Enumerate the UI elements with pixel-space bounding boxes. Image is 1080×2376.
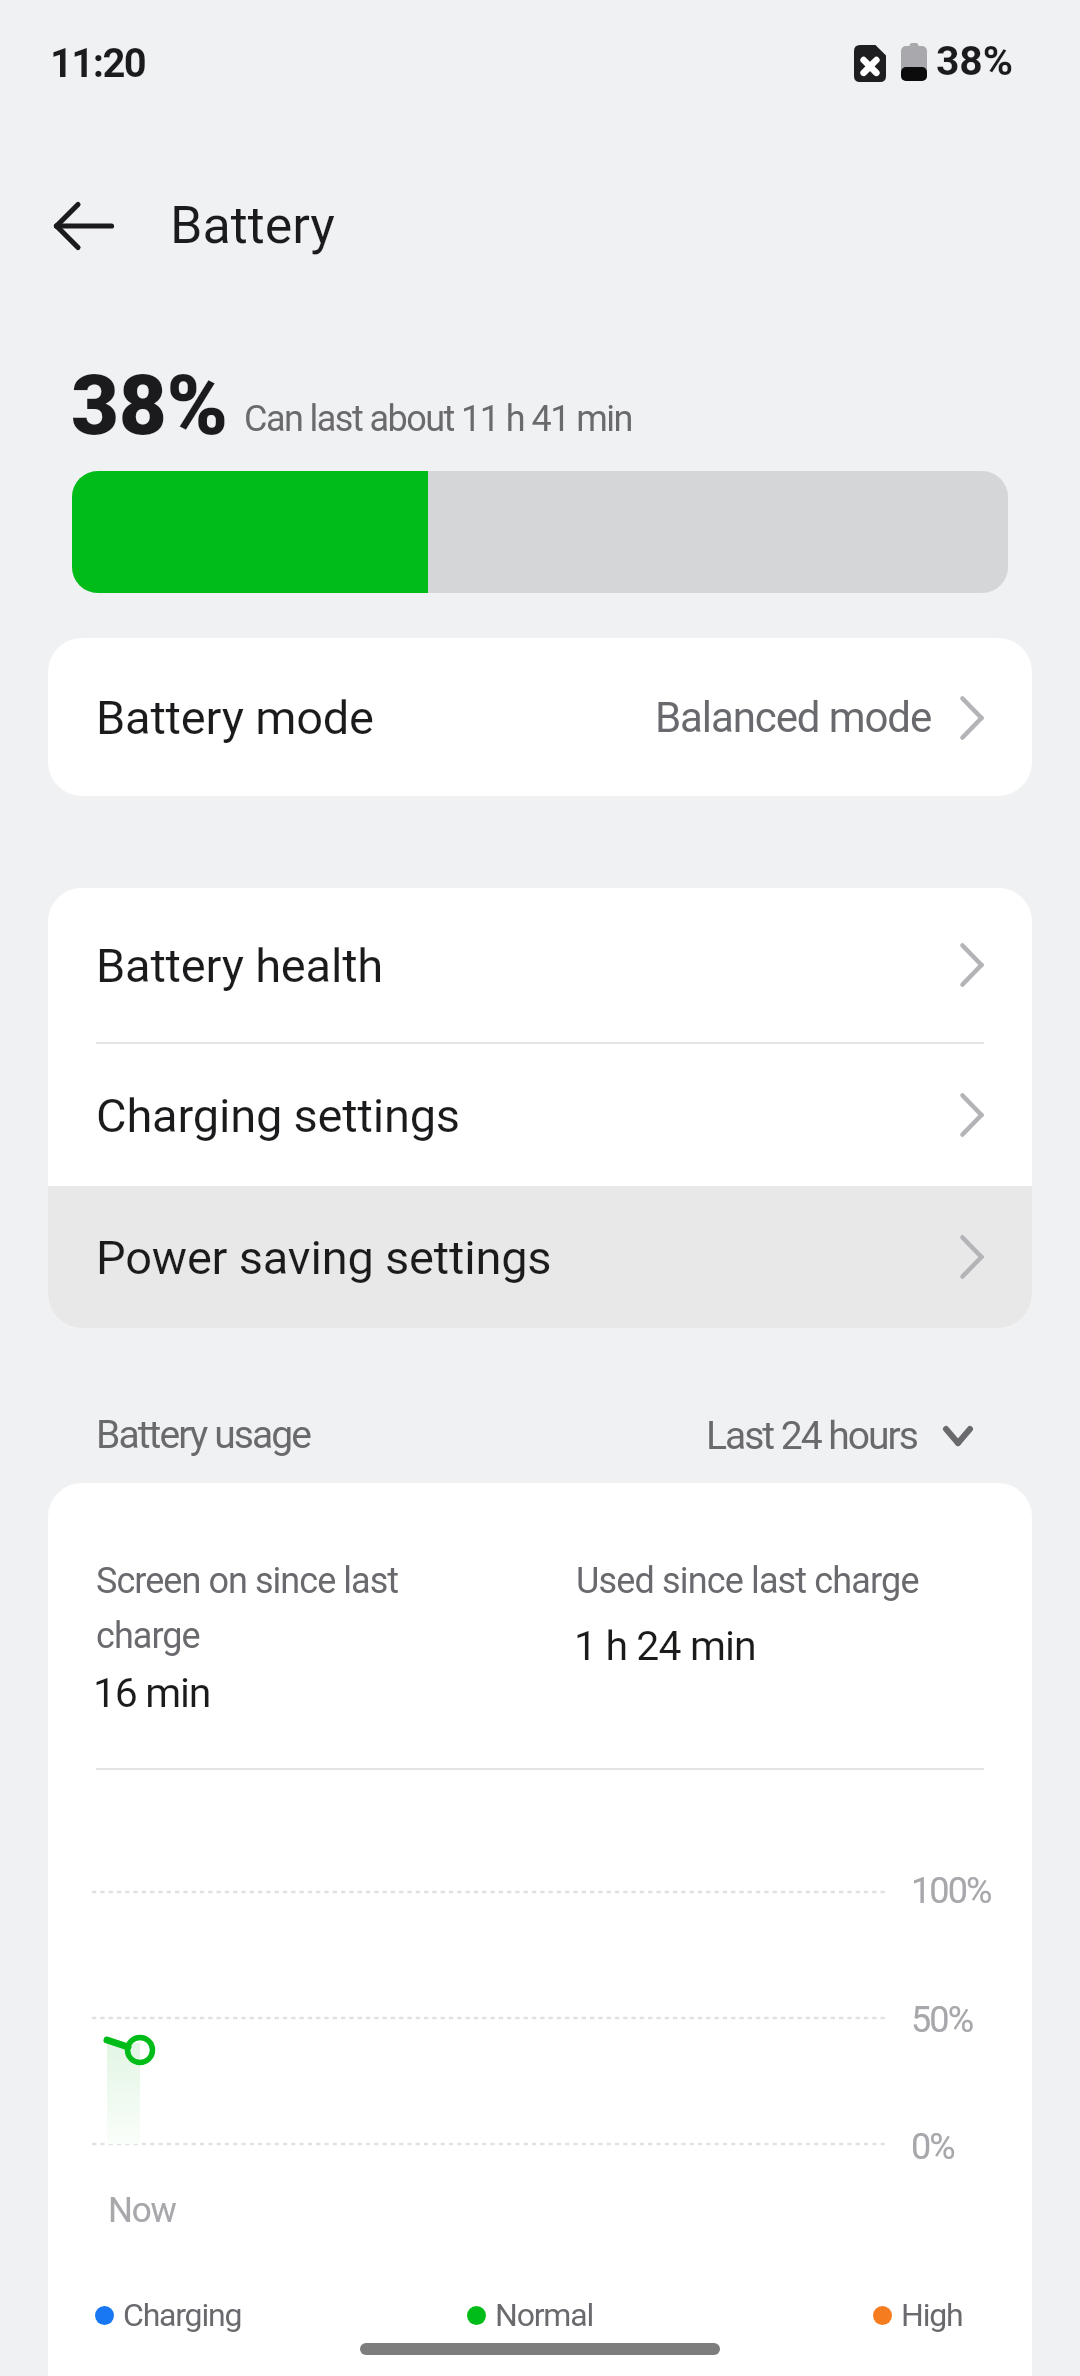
staticText: 38% — [71, 357, 228, 454]
button[interactable]: Battery health — [48, 888, 1032, 1042]
button[interactable]: Last 24 hours — [706, 1413, 973, 1459]
staticText: Charging settings — [96, 1088, 460, 1143]
staticText: Battery usage — [96, 1412, 311, 1458]
staticText: Used since last charge — [576, 1560, 976, 1602]
staticText: Battery — [170, 195, 335, 256]
staticText: Last 24 hours — [706, 1413, 917, 1459]
staticText: Can last about 11 h 41 min — [244, 398, 632, 440]
staticText: 1 h 24 min — [574, 1622, 756, 1670]
button[interactable]: Power saving settings — [48, 1186, 1032, 1328]
staticText: 38% — [936, 37, 1013, 85]
staticText: Battery health — [96, 938, 384, 993]
staticText: 0% — [911, 2126, 954, 2168]
button[interactable]: Battery mode — [48, 638, 1032, 796]
staticText: Balanced mode — [655, 693, 932, 742]
staticText: Normal — [495, 2296, 593, 2334]
staticText: 16 min — [93, 1669, 211, 1717]
staticText: Charging — [123, 2296, 242, 2334]
button[interactable]: Back — [20, 178, 114, 272]
button[interactable]: Charging settings — [48, 1044, 1032, 1186]
staticText: 100% — [911, 1870, 991, 1912]
staticText: Power saving settings — [96, 1230, 552, 1285]
staticText: Battery mode — [96, 690, 374, 745]
staticText: High — [901, 2296, 963, 2334]
staticText: 50% — [911, 1999, 973, 2041]
staticText: 11:20 — [50, 40, 146, 87]
staticText: Screen on since last charge — [96, 1560, 416, 1657]
staticText: Now — [108, 2190, 176, 2231]
